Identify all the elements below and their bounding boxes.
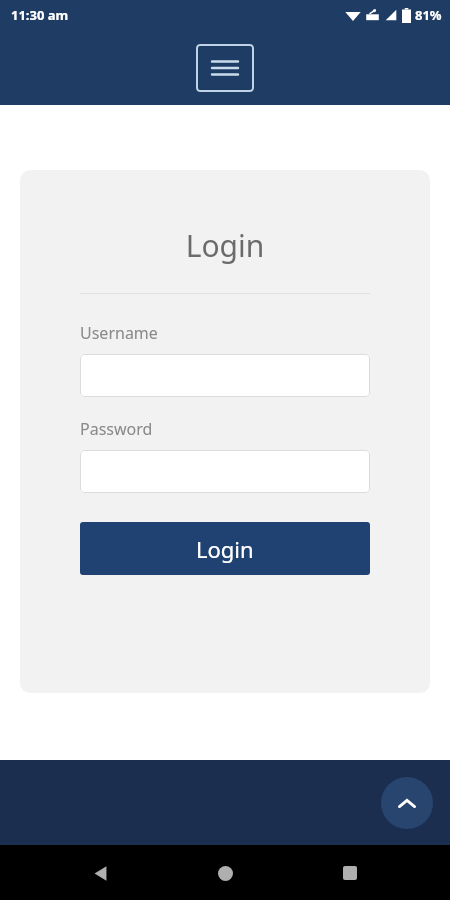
- button[interactable]: Login: [80, 522, 370, 575]
- button[interactable]: Password input field: [80, 450, 370, 493]
- staticText: Login: [80, 225, 370, 266]
- button[interactable]: Scroll to top: [381, 777, 433, 829]
- button[interactable]: Username input field: [80, 354, 370, 397]
- button[interactable]: Back: [75, 848, 125, 898]
- staticText: 11:30 am: [11, 6, 69, 24]
- button[interactable]: Open navigation menu: [196, 44, 254, 92]
- staticText: Login: [196, 534, 254, 564]
- staticText: Password: [80, 418, 153, 440]
- staticText: Username: [80, 322, 158, 344]
- button[interactable]: Recent apps: [325, 848, 375, 898]
- staticText: 81%: [415, 6, 442, 24]
- button[interactable]: Home: [200, 848, 250, 898]
